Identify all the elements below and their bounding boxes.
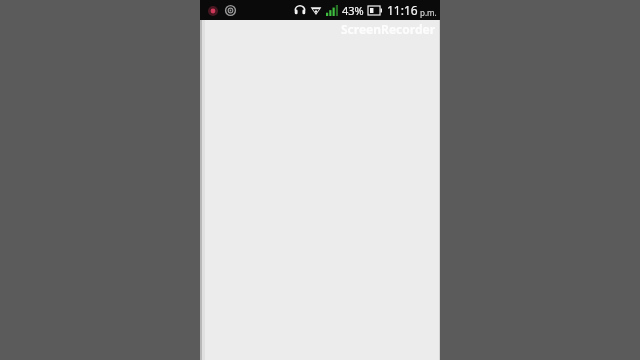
button[interactable]: Recording notifications <box>206 3 238 18</box>
staticText: p.m. <box>420 7 437 18</box>
staticText: 43% <box>342 3 364 18</box>
button[interactable]: Status icons <box>294 2 437 18</box>
staticText: ScreenRecorder <box>341 21 436 37</box>
staticText: 11:16 <box>387 2 418 18</box>
